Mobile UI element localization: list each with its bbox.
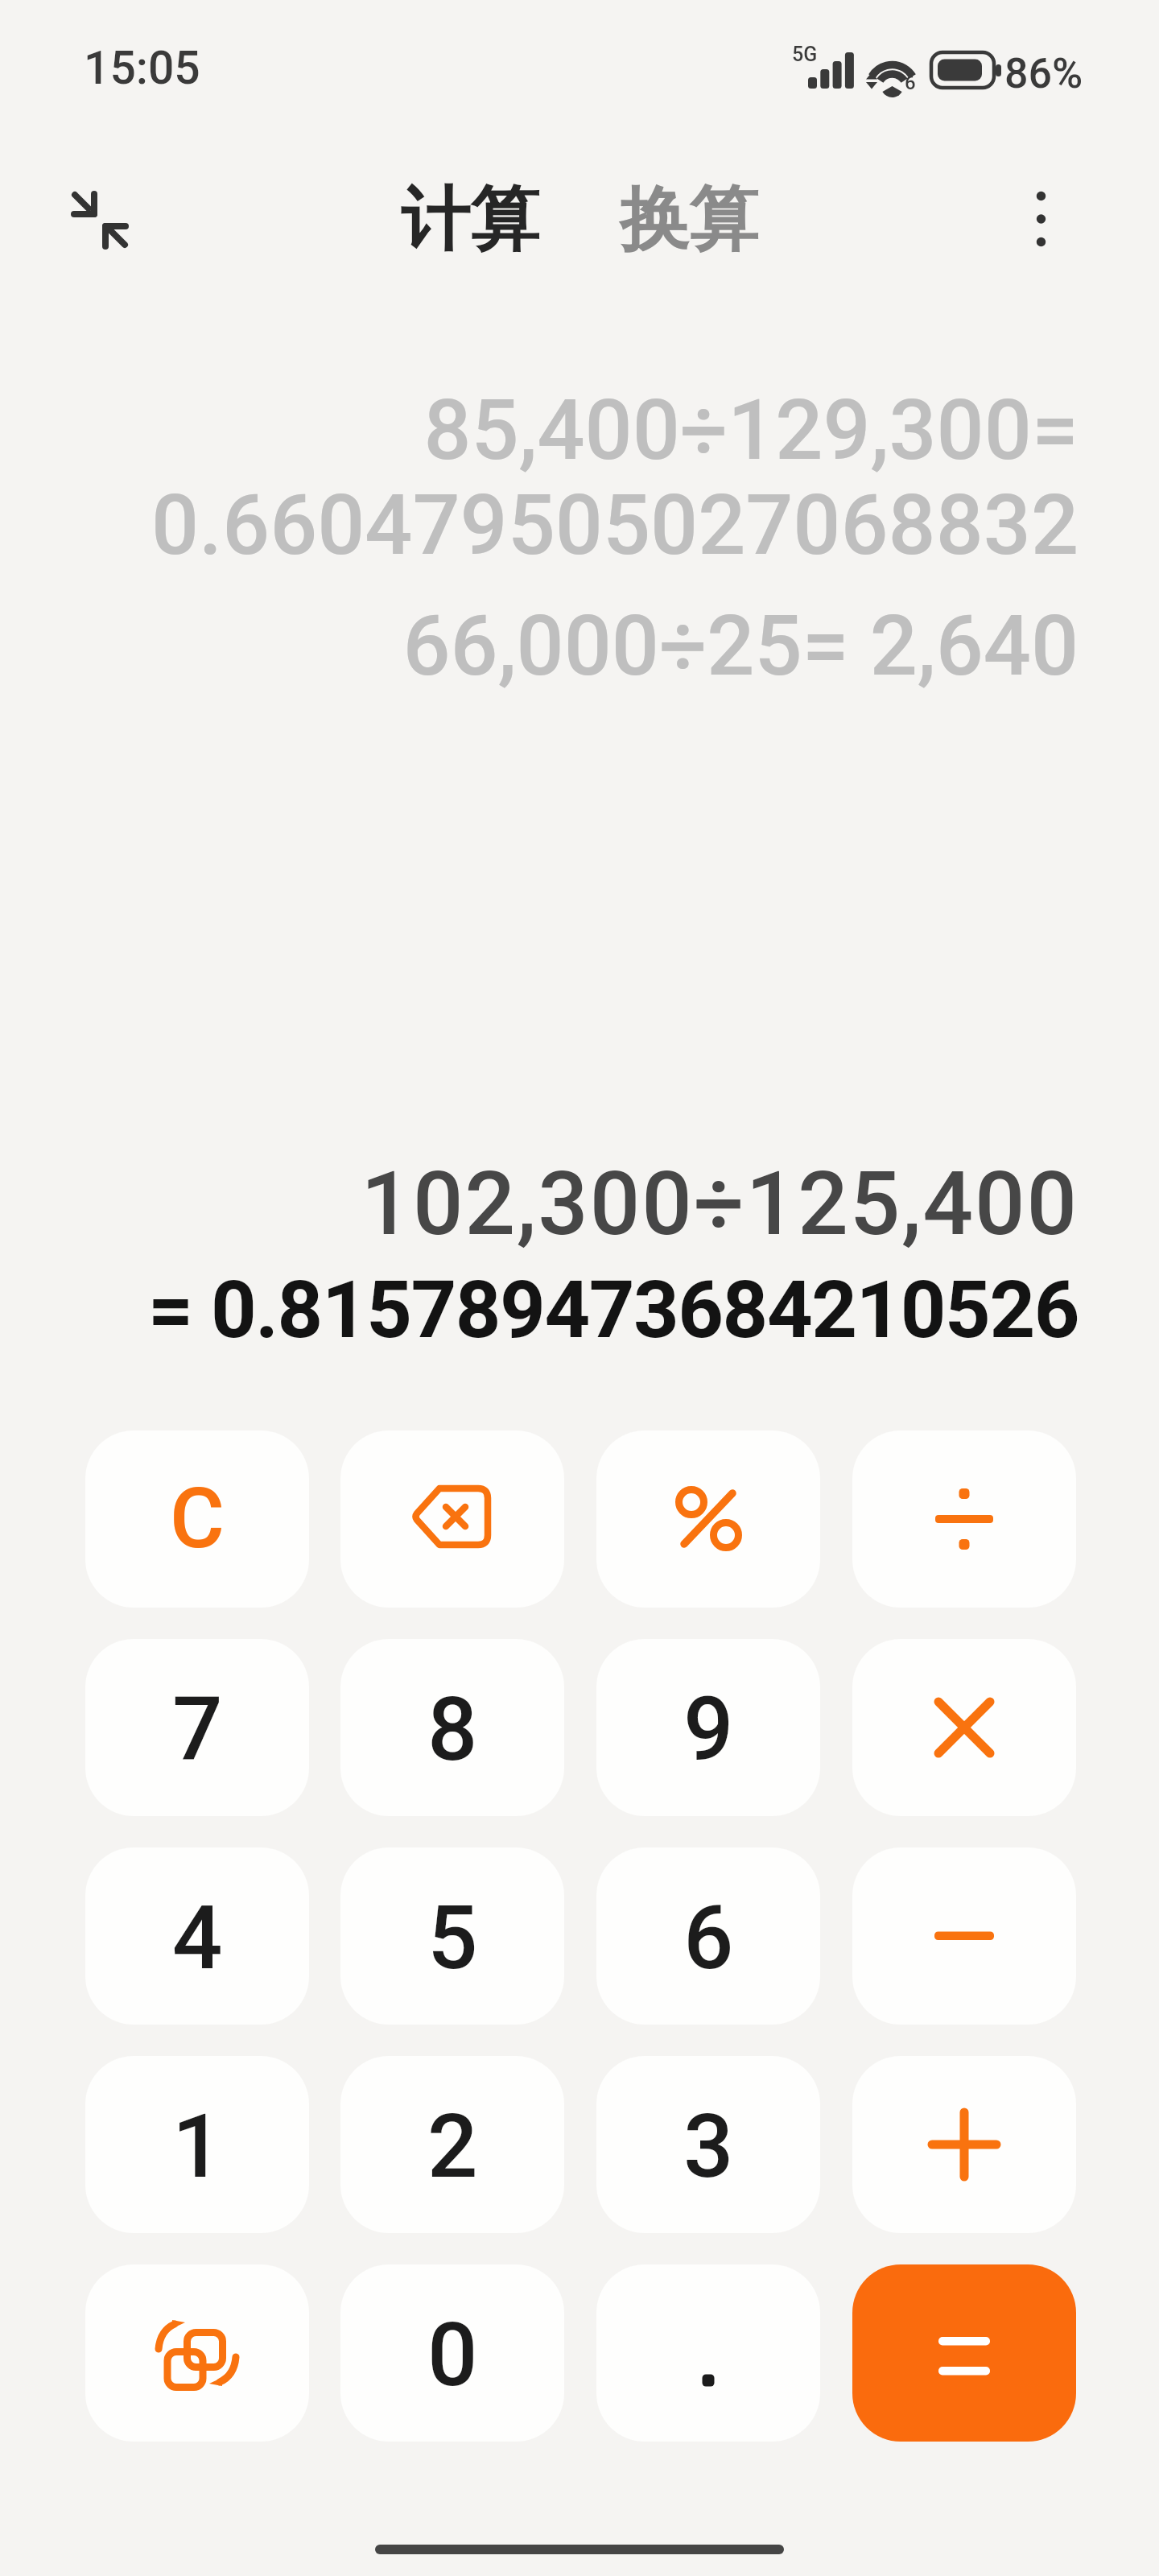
button[interactable]: 4 xyxy=(85,1847,309,2025)
staticText: 9 xyxy=(683,1678,734,1781)
button[interactable]: 2 xyxy=(340,2056,564,2233)
button[interactable]: 计算 xyxy=(401,176,539,263)
button[interactable] xyxy=(48,169,153,266)
button[interactable]: 6 xyxy=(596,1847,820,2025)
staticText: 0.660479505027068832 xyxy=(151,477,1079,575)
button[interactable] xyxy=(1008,171,1073,267)
button[interactable]: 1 xyxy=(85,2056,309,2233)
button[interactable]: 8 xyxy=(340,1639,564,1816)
button[interactable]: 0 xyxy=(340,2264,564,2442)
staticText: C xyxy=(170,1470,225,1568)
button[interactable]: 7 xyxy=(85,1639,309,1816)
button[interactable]: 3 xyxy=(596,2056,820,2233)
staticText: = 0.815789473684210526 xyxy=(147,1263,1079,1356)
button[interactable] xyxy=(852,2056,1076,2233)
staticText: 1 xyxy=(172,2095,223,2198)
staticText: 5 xyxy=(427,1886,478,1990)
button[interactable] xyxy=(852,1430,1076,1608)
button[interactable] xyxy=(852,2264,1076,2442)
staticText: 86% xyxy=(1004,49,1083,98)
button[interactable]: 换算 xyxy=(620,176,758,263)
staticText: 6 xyxy=(683,1886,734,1990)
staticText: 8 xyxy=(427,1678,478,1781)
button[interactable] xyxy=(852,1847,1076,2025)
staticText: 2 xyxy=(427,2095,478,2198)
button[interactable]: 5 xyxy=(340,1847,564,2025)
button[interactable]: 9 xyxy=(596,1639,820,1816)
staticText: 15:05 xyxy=(84,41,200,95)
button[interactable] xyxy=(340,1430,564,1608)
staticText: 0 xyxy=(427,2303,478,2407)
staticText: 102,300÷125,400 xyxy=(361,1152,1079,1256)
staticText: 3 xyxy=(683,2095,734,2198)
staticText: 7 xyxy=(172,1678,223,1781)
staticText: 66,000÷25= 2,640 xyxy=(402,597,1079,696)
button[interactable] xyxy=(85,2264,309,2442)
button[interactable] xyxy=(596,1430,820,1608)
staticText: 85,400÷129,300= xyxy=(423,382,1079,480)
button[interactable] xyxy=(852,1639,1076,1816)
staticText: 5G xyxy=(792,43,818,66)
button[interactable]: C xyxy=(85,1430,309,1608)
staticText: 4 xyxy=(172,1886,223,1990)
staticText: 6 xyxy=(905,72,916,94)
button[interactable] xyxy=(596,2264,820,2442)
